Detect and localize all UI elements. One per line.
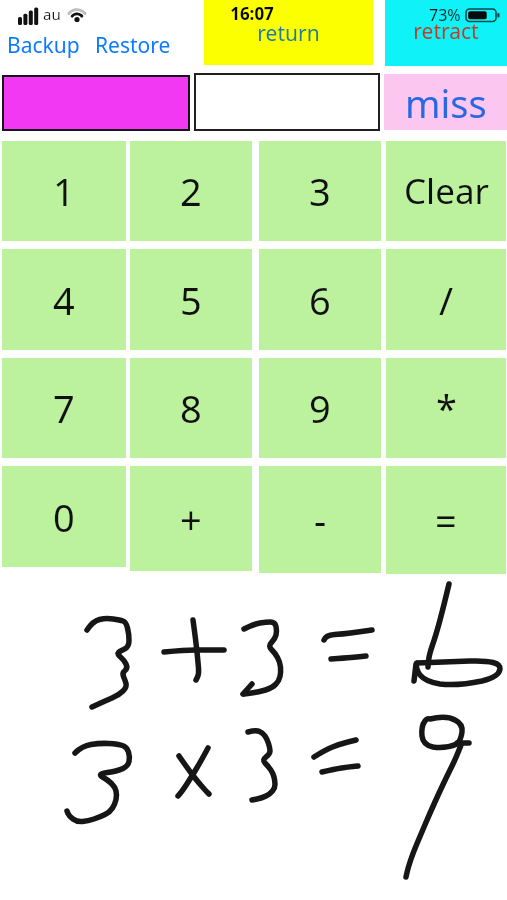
- staticText: +: [180, 493, 202, 545]
- button[interactable]: 8: [130, 358, 252, 458]
- button[interactable]: 1: [2, 141, 126, 241]
- staticText: Clear: [404, 167, 489, 215]
- button[interactable]: [204, 0, 373, 65]
- staticText: =: [435, 494, 457, 546]
- staticText: 1: [53, 165, 75, 217]
- button[interactable]: +: [130, 466, 252, 571]
- staticText: 3: [309, 165, 331, 217]
- staticText: /: [439, 274, 454, 326]
- staticText: 8: [180, 382, 202, 434]
- staticText: 7: [53, 382, 75, 434]
- staticText: Backup: [7, 31, 80, 60]
- button[interactable]: 2: [130, 141, 252, 241]
- button[interactable]: 6: [259, 249, 381, 350]
- staticText: 0: [53, 491, 75, 543]
- button[interactable]: 5: [130, 249, 252, 350]
- button[interactable]: Clear: [386, 141, 506, 241]
- button[interactable]: Restore: [95, 31, 171, 60]
- staticText: 9: [309, 382, 331, 434]
- staticText: 2: [180, 165, 202, 217]
- staticText: *: [436, 382, 457, 434]
- button[interactable]: 9: [259, 358, 381, 458]
- button[interactable]: -: [259, 466, 381, 573]
- button[interactable]: Backup: [7, 31, 80, 60]
- button[interactable]: 7: [2, 358, 126, 458]
- button[interactable]: 4: [2, 249, 126, 350]
- staticText: 4: [53, 274, 75, 326]
- button[interactable]: [2, 75, 190, 131]
- staticText: retract: [413, 17, 479, 46]
- button[interactable]: *: [386, 358, 506, 458]
- staticText: 5: [180, 274, 202, 326]
- staticText: 6: [309, 274, 331, 326]
- button[interactable]: [194, 73, 380, 131]
- staticText: au: [43, 4, 61, 24]
- staticText: 73%: [429, 4, 461, 26]
- button[interactable]: miss: [384, 74, 507, 130]
- staticText: return: [257, 19, 320, 48]
- staticText: -: [314, 494, 327, 546]
- button[interactable]: 3: [259, 141, 381, 241]
- staticText: miss: [405, 77, 487, 129]
- button[interactable]: /: [386, 249, 506, 350]
- button[interactable]: [385, 0, 507, 66]
- button[interactable]: =: [386, 466, 506, 574]
- staticText: Restore: [95, 31, 171, 60]
- button[interactable]: 0: [2, 466, 126, 567]
- staticText: 16:07: [230, 2, 274, 24]
